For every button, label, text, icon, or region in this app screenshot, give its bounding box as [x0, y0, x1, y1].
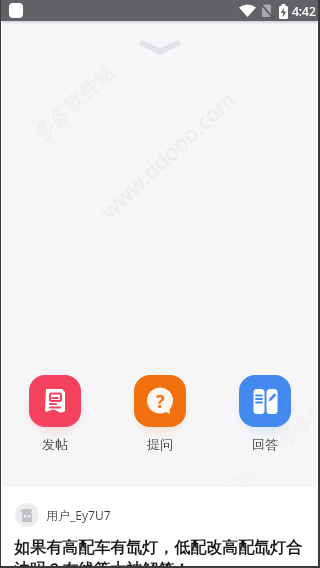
button[interactable]: ? — [134, 375, 186, 427]
button[interactable]: 用户_Ey7U7 — [0, 487, 320, 568]
staticText: 4:42 — [292, 3, 316, 19]
button[interactable] — [139, 39, 181, 55]
staticText: 发帖 — [42, 436, 68, 452]
staticText: 如果有高配车有氙灯，低配改高配氙灯合 法吗？在线等大神解答！ — [14, 538, 302, 568]
staticText: 回答 — [252, 436, 278, 452]
staticText: 用户_Ey7U7 — [46, 507, 111, 523]
button[interactable] — [239, 375, 291, 427]
staticText: 多多软件站 — [170, 464, 260, 551]
staticText: 提问 — [147, 436, 173, 452]
staticText: ? — [156, 389, 165, 414]
staticText: 多多软件站 — [273, 367, 320, 454]
button[interactable] — [29, 375, 81, 427]
